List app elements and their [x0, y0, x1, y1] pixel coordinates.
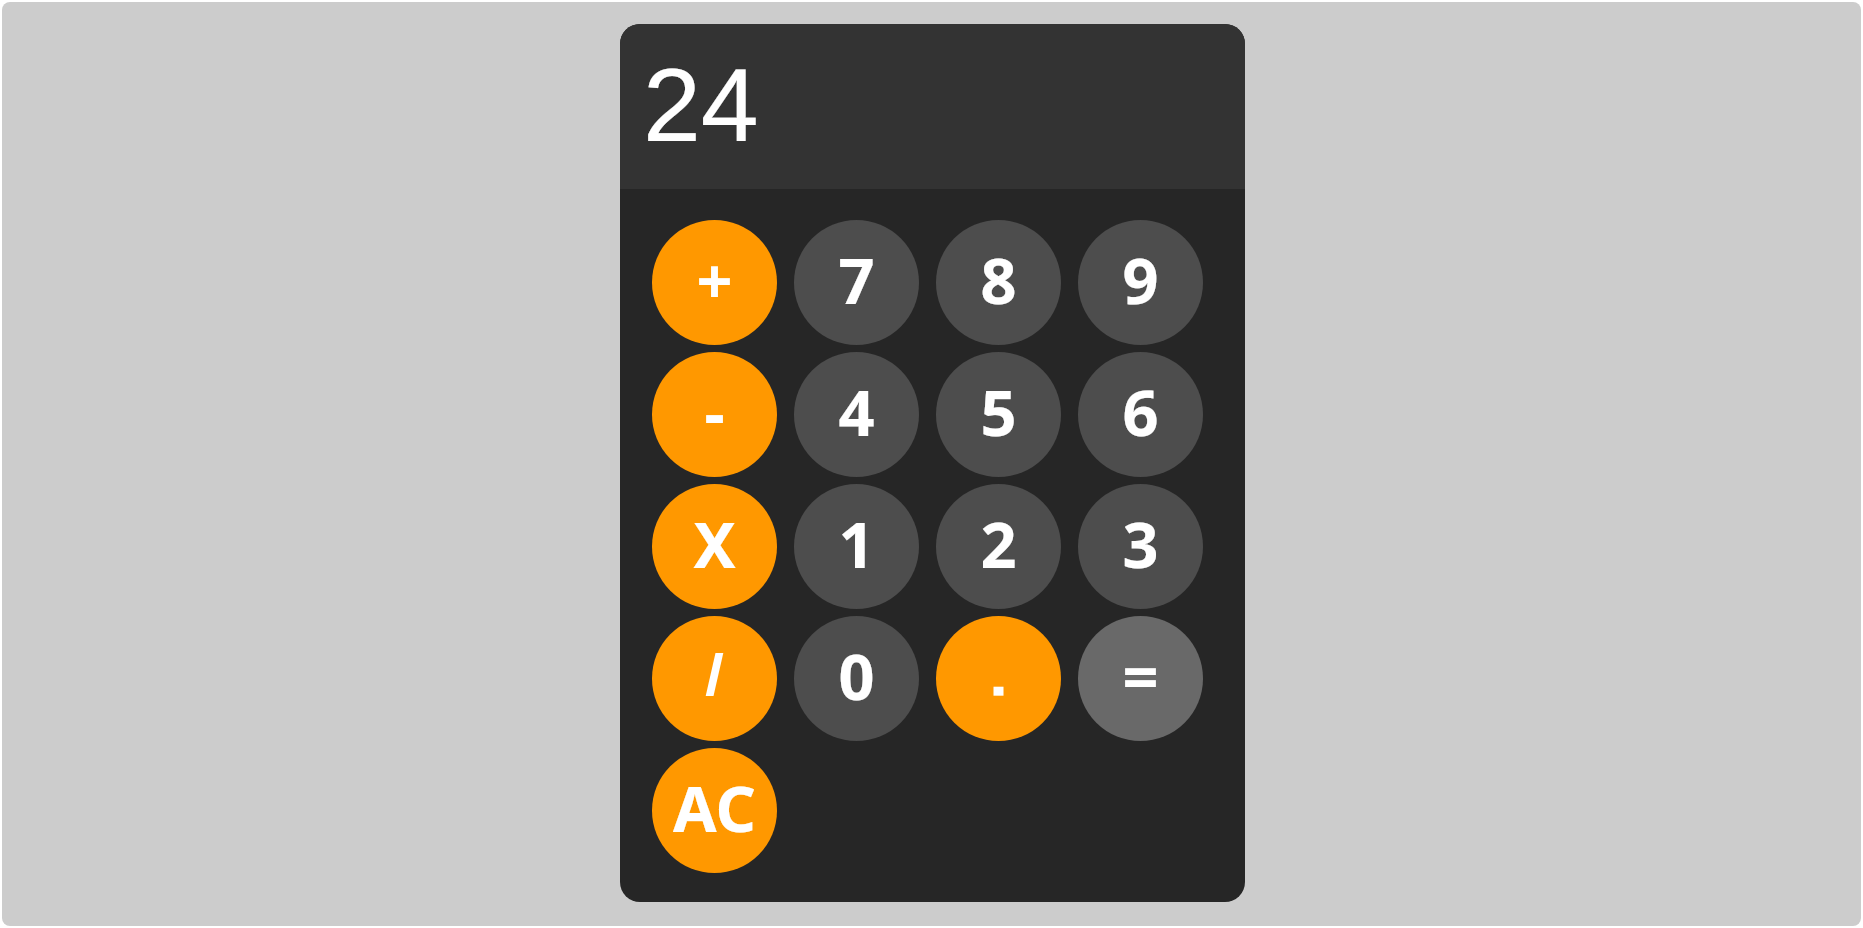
staticText: X: [693, 501, 736, 587]
button[interactable]: Six: [1078, 352, 1203, 477]
staticText: 6: [1122, 369, 1159, 455]
button[interactable]: Divide: [652, 616, 777, 741]
staticText: 8: [980, 237, 1017, 323]
button[interactable]: Four: [794, 352, 919, 477]
staticText: 7: [838, 237, 875, 323]
staticText: 5: [980, 369, 1017, 455]
button[interactable]: Eight: [936, 220, 1061, 345]
button[interactable]: All clear: [652, 748, 777, 873]
staticText: 2: [980, 501, 1017, 587]
staticText: 3: [1122, 501, 1159, 587]
staticText: +: [696, 237, 733, 323]
button[interactable]: Two: [936, 484, 1061, 609]
button[interactable]: Minus: [652, 352, 777, 477]
button[interactable]: Five: [936, 352, 1061, 477]
button[interactable]: Zero: [794, 616, 919, 741]
staticText: 1: [838, 501, 875, 587]
staticText: 24: [643, 47, 759, 163]
staticText: =: [1122, 633, 1159, 719]
staticText: 4: [838, 369, 875, 455]
staticText: -: [704, 369, 725, 455]
staticText: AC: [673, 765, 756, 851]
button[interactable]: Three: [1078, 484, 1203, 609]
button[interactable]: Decimal point: [936, 616, 1061, 741]
button[interactable]: Nine: [1078, 220, 1203, 345]
button[interactable]: One: [794, 484, 919, 609]
staticText: 0: [838, 633, 875, 719]
button[interactable]: Seven: [794, 220, 919, 345]
staticText: 9: [1122, 237, 1159, 323]
button[interactable]: Plus: [652, 220, 777, 345]
button[interactable]: Multiply: [652, 484, 777, 609]
button[interactable]: Equals: [1078, 616, 1203, 741]
